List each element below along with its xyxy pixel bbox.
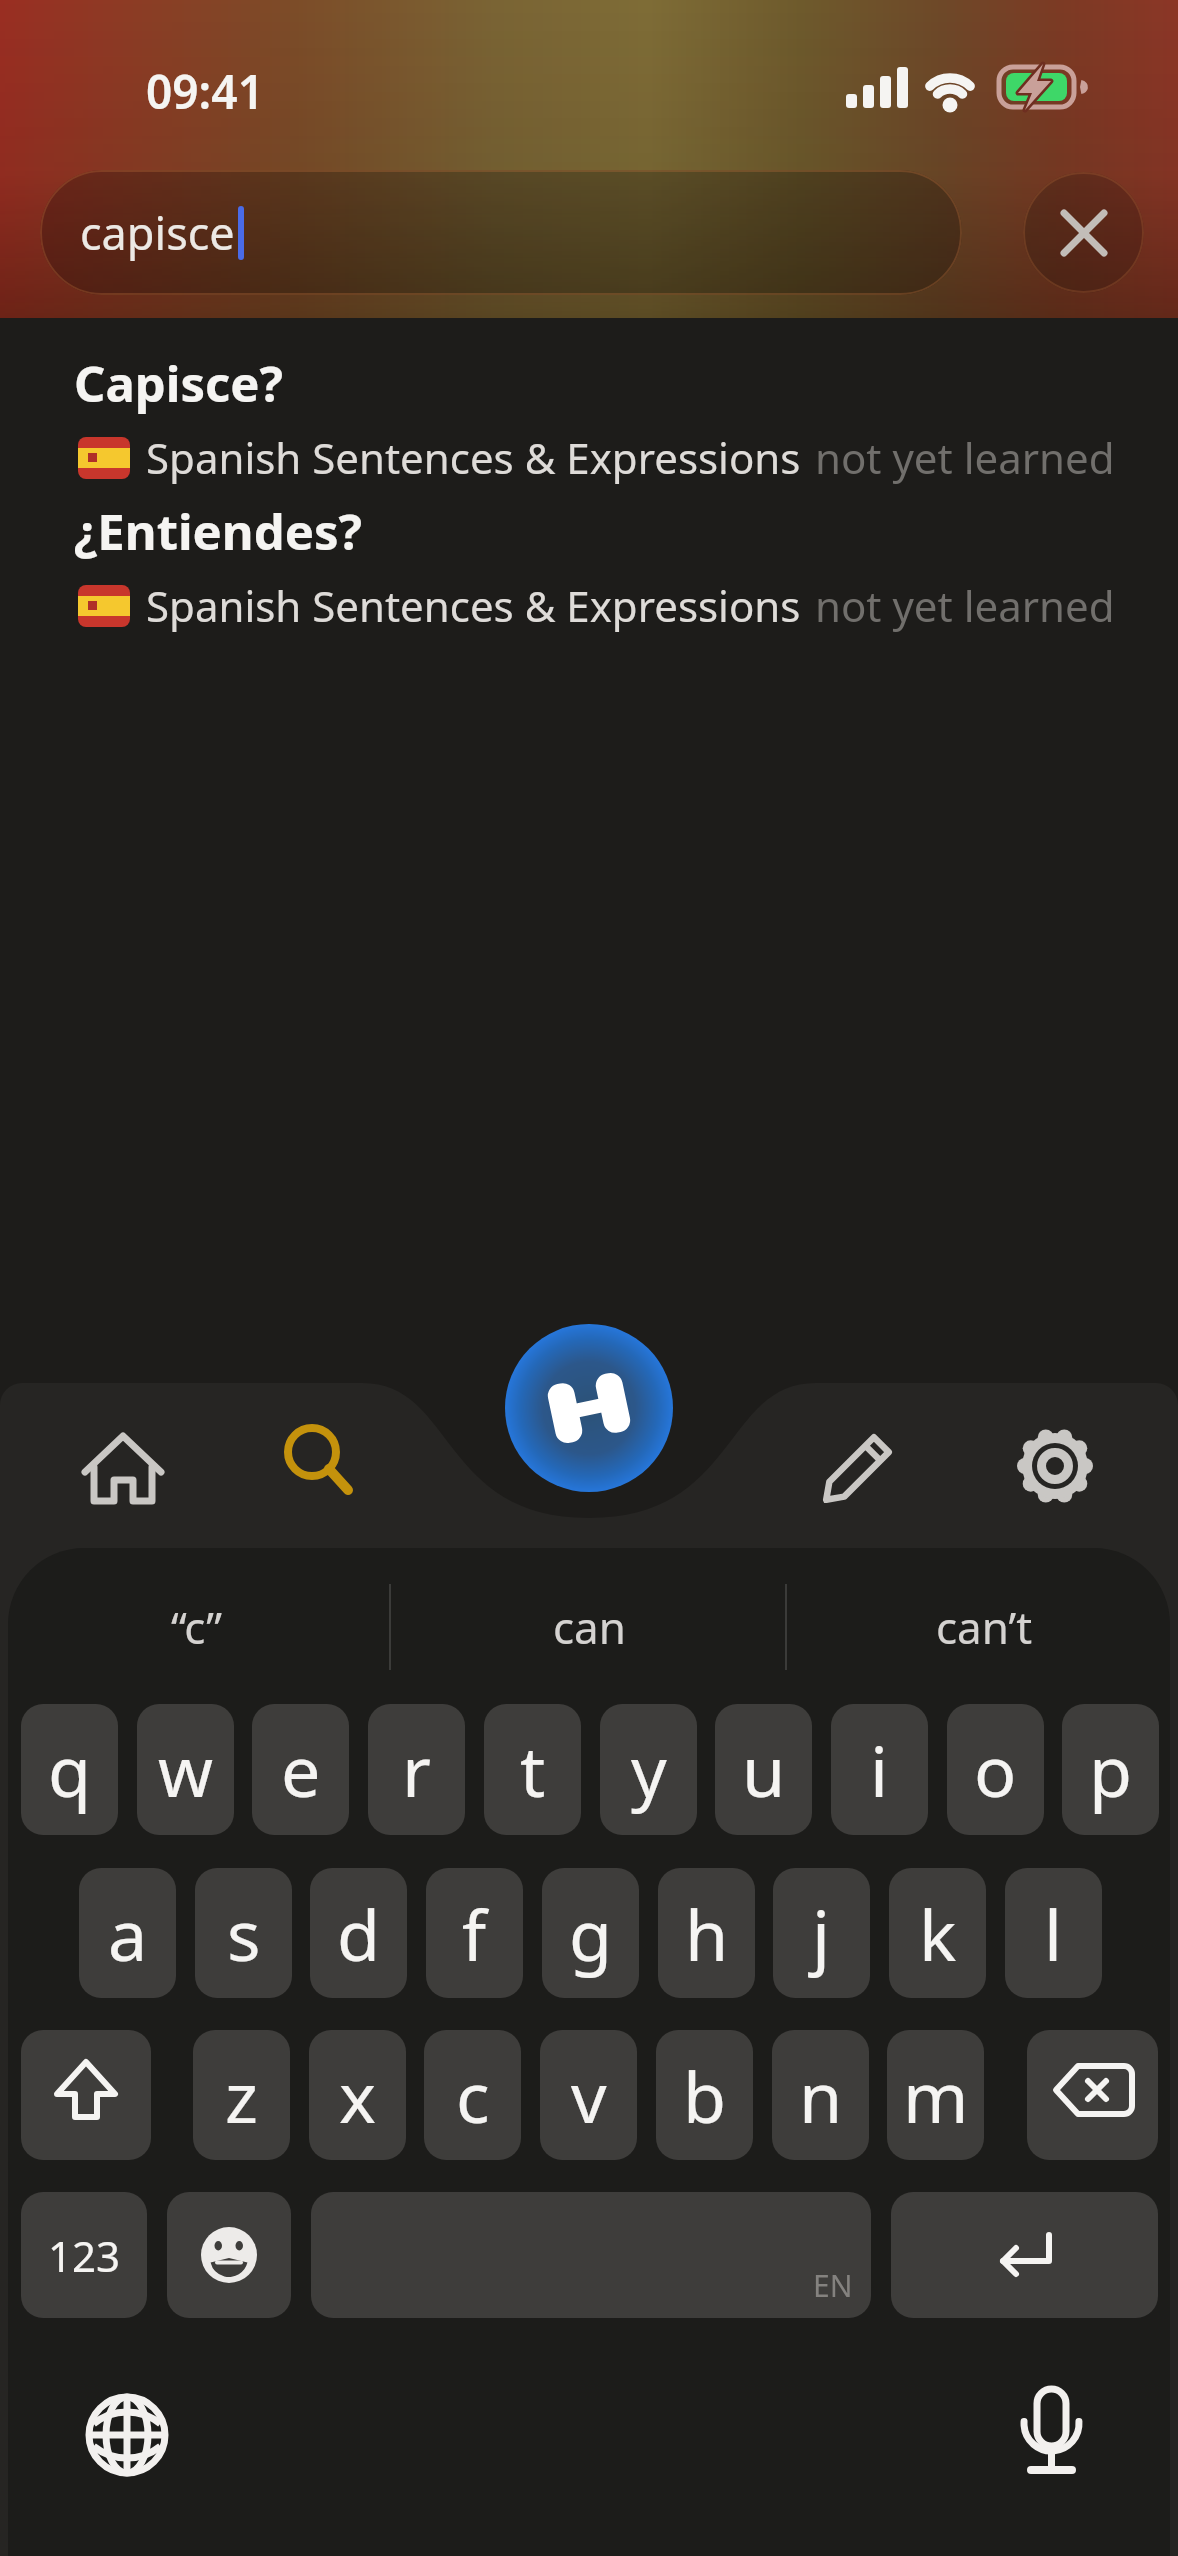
button[interactable]: a [79,1868,176,1998]
button[interactable]: r [368,1704,465,1835]
staticText: can’t [936,1597,1033,1657]
button[interactable] [67,2375,187,2495]
button[interactable]: t [484,1704,581,1835]
button[interactable]: j [773,1868,870,1998]
button[interactable]: v [540,2030,637,2160]
staticText: u [742,1722,786,1817]
staticText: g [569,1886,613,1981]
staticText: z [225,2048,258,2143]
button[interactable] [21,2030,151,2160]
button[interactable]: i [831,1704,928,1835]
staticText: e [281,1722,321,1817]
staticText: n [799,2048,843,2143]
button[interactable] [258,1398,378,1518]
staticText: c [456,2048,490,2143]
staticText: b [683,2048,727,2143]
staticText: Spanish Sentences & Expressions [146,577,801,634]
button[interactable]: e [252,1704,349,1835]
staticText: 123 [48,2227,121,2284]
button[interactable]: capisce [40,170,962,295]
staticText: q [48,1722,92,1817]
staticText: r [402,1722,431,1817]
button[interactable]: EN [311,2192,871,2318]
button[interactable]: q [21,1704,118,1835]
button[interactable] [1027,2030,1158,2160]
staticText: h [685,1886,729,1981]
staticText: 09:41 [146,60,264,123]
staticText: capisce [80,202,235,263]
button[interactable]: Capisce? [74,350,1115,486]
button[interactable]: x [309,2030,406,2160]
button[interactable]: h [658,1868,755,1998]
staticText: v [571,2048,607,2143]
staticText: o [974,1722,1017,1817]
staticText: w [158,1722,214,1817]
staticText: t [520,1722,546,1817]
staticText: i [870,1722,889,1817]
button[interactable] [505,1324,673,1492]
staticText: j [812,1886,831,1981]
button[interactable]: u [715,1704,812,1835]
button[interactable] [63,1408,183,1528]
staticText: EN [813,2265,853,2306]
button[interactable]: can’t [824,1585,1144,1669]
staticText: f [462,1886,487,1981]
button[interactable]: y [600,1704,697,1835]
button[interactable] [991,2373,1111,2493]
staticText: x [339,2048,377,2143]
button[interactable] [995,1406,1115,1526]
button[interactable] [798,1408,918,1528]
staticText: ¿Entiendes? [74,498,362,565]
button[interactable]: b [656,2030,753,2160]
button[interactable]: s [195,1868,292,1998]
button[interactable]: 123 [21,2192,147,2318]
staticText: can [553,1597,626,1657]
button[interactable]: d [310,1868,407,1998]
button[interactable]: o [947,1704,1044,1835]
button[interactable] [1023,172,1144,293]
button[interactable]: “c” [36,1585,356,1669]
button[interactable] [167,2192,291,2318]
staticText: y [631,1722,667,1817]
button[interactable]: ¿Entiendes? [74,498,1115,634]
button[interactable]: g [542,1868,639,1998]
button[interactable]: c [424,2030,521,2160]
button[interactable]: w [137,1704,234,1835]
staticText: Capisce? [74,350,283,417]
button[interactable]: f [426,1868,523,1998]
staticText: s [227,1886,261,1981]
staticText: d [337,1886,381,1981]
button[interactable] [891,2192,1158,2318]
staticText: m [903,2048,969,2143]
staticText: p [1089,1722,1133,1817]
staticText: not yet learned [815,577,1115,634]
staticText: “c” [171,1597,222,1657]
button[interactable]: z [193,2030,290,2160]
button[interactable]: m [887,2030,984,2160]
button[interactable]: l [1005,1868,1102,1998]
staticText: l [1044,1886,1063,1981]
button[interactable]: can [429,1585,749,1669]
staticText: not yet learned [815,429,1115,486]
staticText: Spanish Sentences & Expressions [146,429,801,486]
button[interactable]: n [772,2030,869,2160]
button[interactable]: p [1062,1704,1159,1835]
staticText: k [919,1886,957,1981]
staticText: a [108,1886,148,1981]
button[interactable]: k [889,1868,986,1998]
